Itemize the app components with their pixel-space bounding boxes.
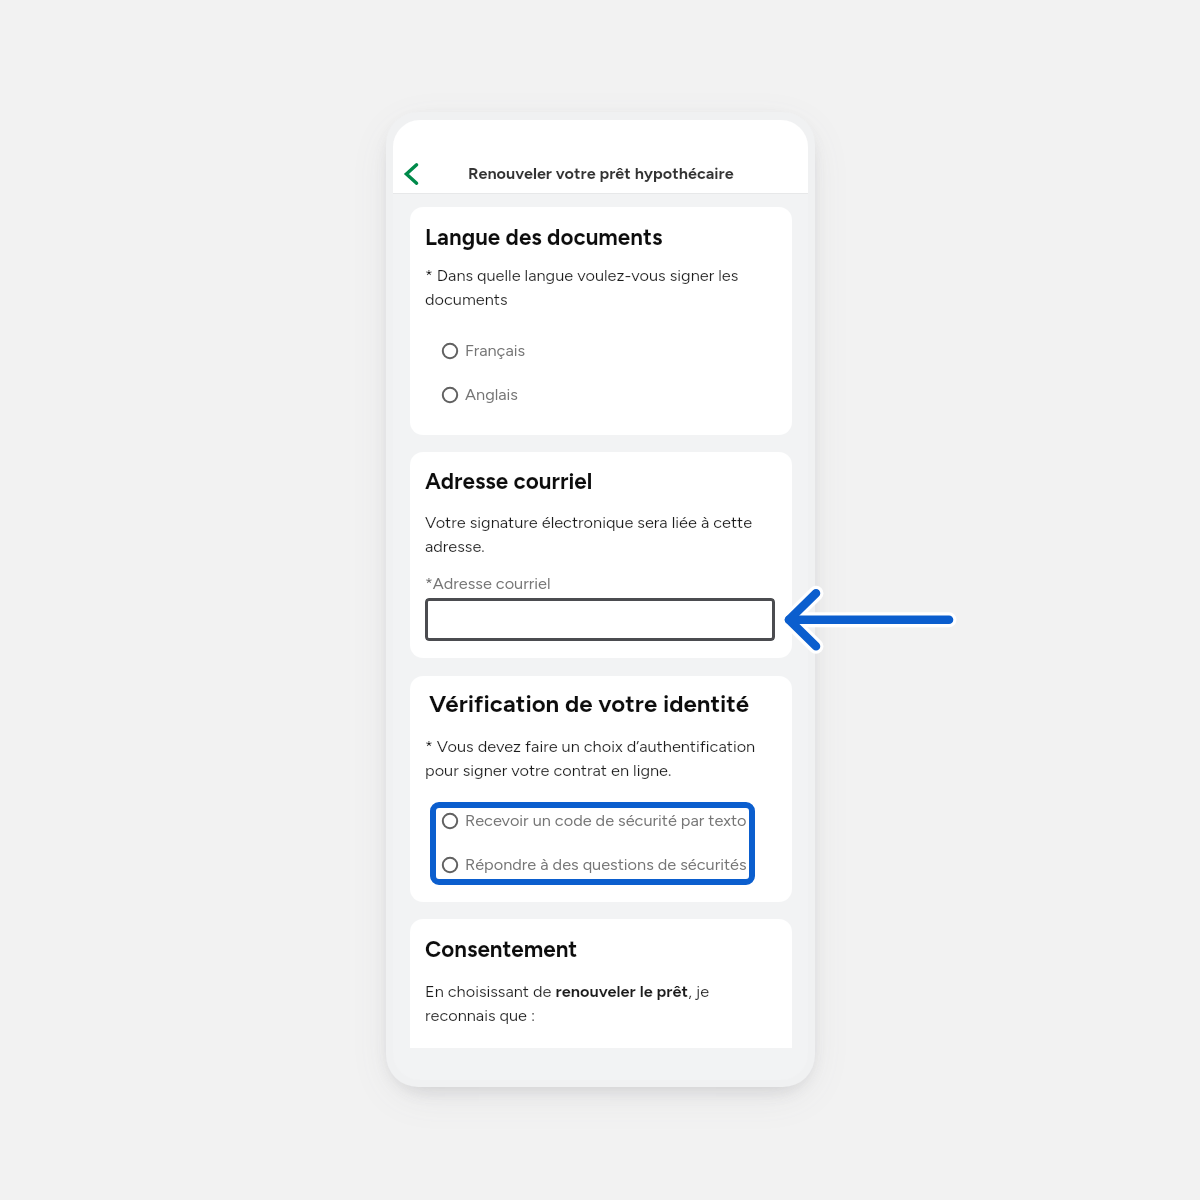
button[interactable]: Adresse courriel: [425, 598, 775, 641]
staticText: *Adresse courriel: [425, 574, 551, 594]
staticText: * Dans quelle langue voulez-vous signer …: [425, 266, 739, 309]
button[interactable]: Français: [441, 340, 526, 362]
staticText: Renouveler votre prêt hypothécaire: [468, 164, 734, 183]
staticText: Langue des documents: [425, 224, 663, 251]
staticText: Consentement: [425, 936, 578, 963]
button[interactable]: Retour: [393, 156, 429, 192]
staticText: Répondre à des questions de sécurités: [465, 855, 747, 875]
button[interactable]: Anglais: [441, 384, 518, 406]
staticText: Français: [465, 341, 526, 361]
button[interactable]: Recevoir un code de sécurité par texto: [441, 810, 747, 832]
staticText: * Vous devez faire un choix d’authentifi…: [425, 737, 756, 780]
staticText: Recevoir un code de sécurité par texto: [465, 811, 747, 831]
staticText: En choisissant de renouveler le prêt, je…: [425, 982, 710, 1025]
staticText: Adresse courriel: [425, 468, 593, 495]
staticText: Vérification de votre identité: [429, 689, 750, 718]
staticText: Votre signature électronique sera liée à…: [425, 513, 753, 556]
button[interactable]: Répondre à des questions de sécurités: [441, 854, 747, 876]
staticText: Anglais: [465, 385, 518, 405]
